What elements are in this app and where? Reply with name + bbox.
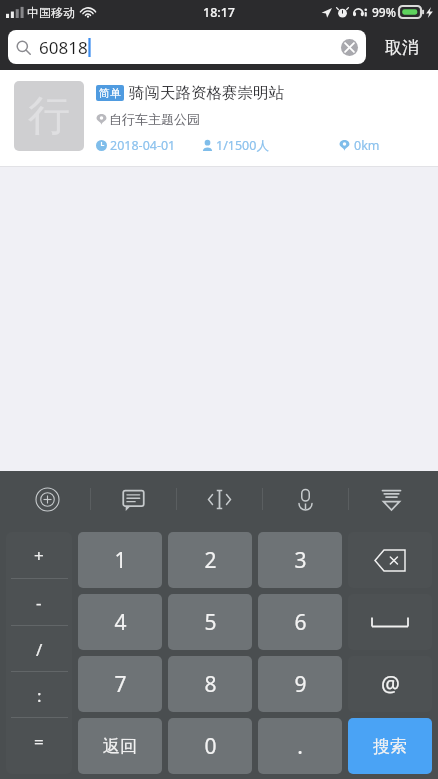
button[interactable]: 7 [78,656,162,712]
button[interactable]: 6 [258,594,342,650]
button[interactable]: + [6,532,72,579]
button[interactable]: 2 [168,532,252,588]
staticText: 自行车主题公园 [109,111,200,127]
staticText: 4 [114,608,127,637]
staticText: - [36,591,42,614]
staticText: 18:17 [203,4,236,21]
staticText: 60818 [39,36,88,59]
button[interactable]: / [6,626,72,672]
staticText: 1 [114,546,127,575]
button[interactable]: Clear text [340,38,358,56]
button[interactable]: Messages [91,471,176,527]
button[interactable]: Hide keyboard [349,471,434,527]
button[interactable]: 行 [0,70,438,167]
button[interactable]: @ [348,656,432,712]
staticText: @ [381,670,400,699]
staticText: 8 [204,670,217,699]
button[interactable]: 返回 [78,718,162,774]
staticText: 3 [294,546,307,575]
staticText: / [36,638,43,661]
button[interactable]: Delete [348,532,432,588]
staticText: 2018-04-01 [110,137,176,154]
button[interactable]: 9 [258,656,342,712]
button[interactable]: Voice input [263,471,348,527]
button[interactable]: Input method [4,471,90,527]
staticText: 搜索 [373,736,407,757]
staticText: 返回 [103,736,137,757]
button[interactable]: - [6,579,72,626]
button[interactable]: Text selection [177,471,262,527]
button[interactable]: 1 [78,532,162,588]
button[interactable]: 0 [168,718,252,774]
staticText: : [37,684,42,707]
button[interactable]: : [6,672,72,718]
staticText: 骑闯天路资格赛崇明站 [129,83,284,103]
staticText: 6 [294,608,307,637]
staticText: + [34,544,44,567]
button[interactable]: 8 [168,656,252,712]
button[interactable]: 5 [168,594,252,650]
button[interactable]: = [6,718,72,764]
staticText: 取消 [385,37,419,58]
button[interactable]: 取消 [366,24,438,70]
staticText: . [297,732,303,761]
button[interactable]: . [258,718,342,774]
button[interactable]: 3 [258,532,342,588]
staticText: 2 [204,546,217,575]
staticText: 5 [204,608,217,637]
button[interactable]: Space [348,594,432,650]
staticText: 简单 [99,86,121,100]
button[interactable]: 60818 [8,30,366,64]
staticText: 0km [354,137,380,154]
staticText: 中国移动 [27,5,75,20]
staticText: 1/1500人 [216,137,269,154]
staticText: 9 [294,670,307,699]
staticText: = [34,730,44,753]
staticText: 0 [204,732,217,761]
staticText: 行 [28,90,70,143]
staticText: 7 [114,670,127,699]
button[interactable]: 4 [78,594,162,650]
staticText: 99% [372,4,396,20]
button[interactable]: 搜索 [348,718,432,774]
